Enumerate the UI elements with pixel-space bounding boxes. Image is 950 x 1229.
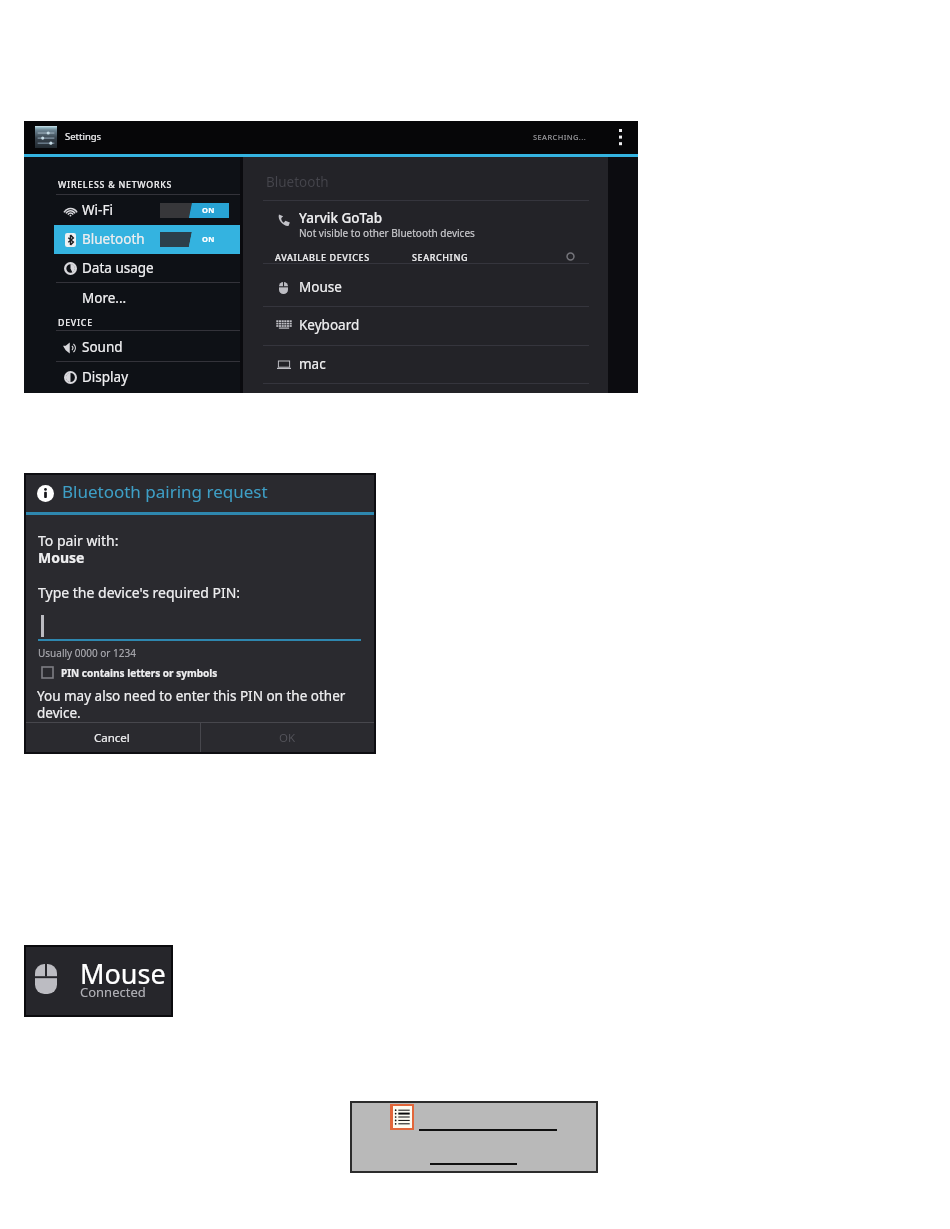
staticText: Bluetooth — [266, 173, 329, 191]
button[interactable]: Cancel — [24, 723, 200, 753]
staticText: Yarvik GoTab — [299, 209, 383, 227]
staticText: SEARCHING — [412, 251, 469, 263]
button[interactable]: mac — [243, 346, 608, 384]
staticText: Mouse — [38, 548, 85, 567]
staticText: Data usage — [82, 259, 154, 277]
button[interactable]: Yarvik GoTab — [243, 201, 589, 248]
staticText: mac — [299, 355, 326, 373]
staticText: Settings — [65, 130, 102, 143]
staticText: Not visible to other Bluetooth devices — [299, 226, 475, 240]
button[interactable]: Data usage — [24, 254, 240, 283]
button[interactable]: Document list — [390, 1104, 414, 1130]
staticText: PIN contains letters or symbols — [61, 666, 218, 680]
button[interactable]: PIN contains letters or symbols — [38, 664, 195, 681]
button[interactable]: More... — [56, 283, 240, 312]
staticText: Keyboard — [299, 316, 360, 334]
staticText: Mouse — [80, 955, 166, 992]
button[interactable]: Settings — [32, 123, 142, 150]
button[interactable]: Bluetooth — [54, 225, 240, 254]
button[interactable]: Keyboard — [243, 307, 608, 345]
button[interactable]: OK — [201, 723, 373, 753]
staticText: SEARCHING... — [533, 132, 587, 142]
staticText: Usually 0000 or 1234 — [38, 646, 136, 660]
button[interactable]: Sound — [24, 332, 240, 362]
staticText: More... — [82, 289, 127, 307]
staticText: Sound — [82, 338, 123, 356]
staticText: To pair with: — [38, 531, 119, 550]
staticText: Mouse — [299, 278, 342, 296]
staticText: DEVICE — [58, 317, 93, 329]
staticText: You may also need to enter this PIN on t… — [37, 687, 367, 722]
staticText: Wi-Fi — [82, 201, 113, 219]
button[interactable]: Mouse — [24, 945, 173, 1017]
staticText: Cancel — [94, 730, 130, 746]
staticText: WIRELESS & NETWORKS — [58, 179, 173, 191]
button[interactable]: Display — [24, 363, 240, 392]
staticText: Display — [82, 368, 129, 386]
button[interactable]: Mouse — [243, 264, 608, 302]
staticText: Type the device's required PIN: — [38, 583, 241, 602]
staticText: Bluetooth — [82, 230, 145, 248]
staticText: ON — [202, 234, 215, 244]
staticText: Connected — [80, 983, 146, 1001]
staticText: OK — [279, 730, 296, 746]
staticText: ON — [202, 205, 215, 215]
staticText: Bluetooth pairing request — [62, 480, 268, 503]
button[interactable]: Wi-Fi — [24, 196, 240, 225]
button[interactable]: More options — [611, 124, 629, 147]
staticText: AVAILABLE DEVICES — [275, 251, 370, 263]
